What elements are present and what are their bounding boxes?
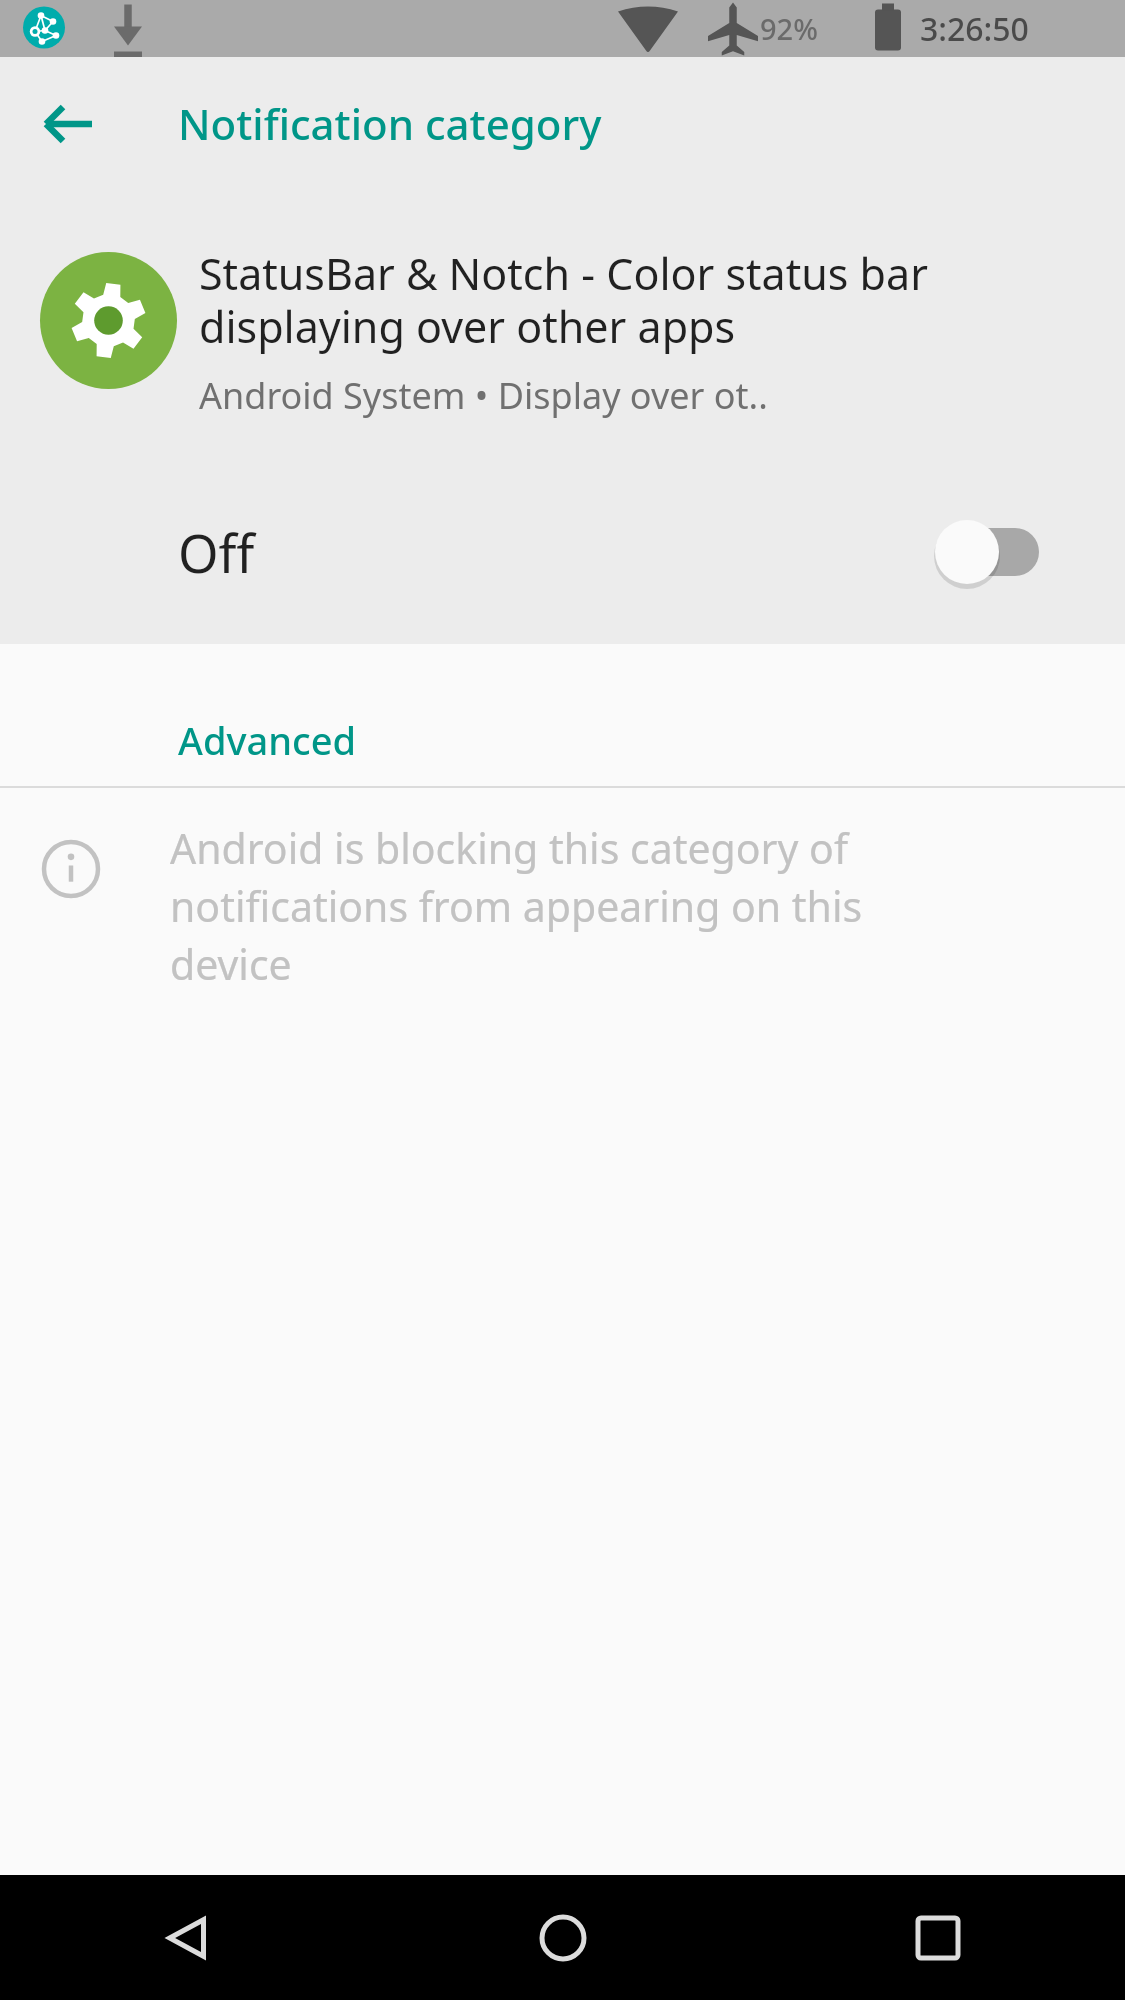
staticText: Android System • Display over ot.. [199,371,768,420]
staticText: Notification category [178,95,602,152]
staticText: Advanced [178,714,357,766]
button[interactable]: Home [375,1875,750,2000]
staticText: StatusBar & Notch - Color status bar dis… [199,244,1101,355]
staticText: 92% [760,9,818,48]
button[interactable]: Toggle notification category [929,511,1047,593]
staticText: Off [178,517,255,588]
button[interactable]: Back [24,79,114,169]
staticText: 3:26:50 [920,7,1029,51]
staticText: Android is blocking this category of not… [170,820,970,992]
button[interactable]: Back [0,1875,375,2000]
button[interactable]: Recent apps [750,1875,1125,2000]
button[interactable]: Advanced [0,644,1125,786]
button[interactable]: Off [0,482,1125,622]
